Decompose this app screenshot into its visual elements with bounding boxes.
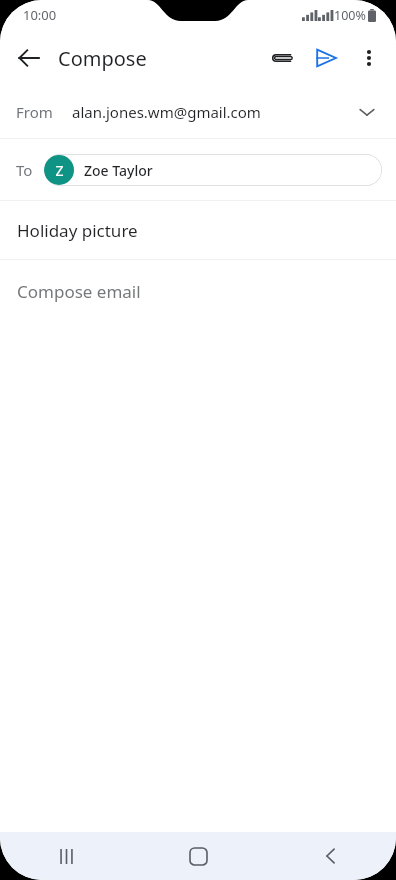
staticText: Z: [55, 161, 64, 180]
staticText: Compose: [58, 45, 147, 72]
button[interactable]: To: [0, 139, 396, 200]
button[interactable]: From: [0, 86, 396, 138]
staticText: Holiday picture: [17, 219, 138, 242]
staticText: To: [16, 160, 33, 180]
staticText: 100%: [334, 7, 366, 24]
button[interactable]: Home: [168, 832, 228, 880]
button[interactable]: More options: [348, 37, 390, 79]
button[interactable]: Back: [8, 37, 50, 79]
button[interactable]: Back: [300, 832, 360, 880]
staticText: From: [16, 102, 53, 122]
button[interactable]: Expand from: [352, 97, 382, 127]
button[interactable]: Recent apps: [36, 832, 96, 880]
button[interactable]: Z: [44, 154, 382, 186]
button[interactable]: Compose email: [0, 260, 396, 832]
button[interactable]: Attach file: [260, 36, 304, 80]
staticText: 10:00: [23, 6, 57, 24]
staticText: Zoe Taylor: [84, 161, 153, 180]
button[interactable]: Holiday picture: [0, 201, 396, 259]
staticText: alan.jones.wm@gmail.com: [72, 102, 261, 122]
button[interactable]: Send: [304, 36, 348, 80]
staticText: Compose email: [17, 280, 141, 303]
